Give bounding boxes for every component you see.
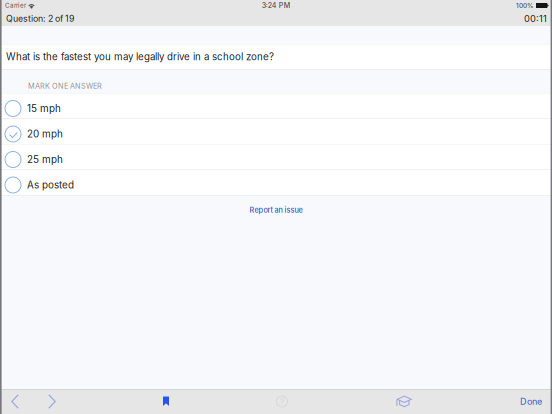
staticText: Carrier: [5, 2, 26, 9]
staticText: Report an issue: [249, 206, 302, 214]
button[interactable]: Report an issue: [0, 203, 552, 216]
button[interactable]: Study guide: [389, 389, 419, 414]
button[interactable]: 25 mph: [0, 144, 552, 170]
button[interactable]: As posted: [0, 170, 552, 195]
staticText: MARK ONE ANSWER: [28, 82, 102, 90]
button[interactable]: 20 mph: [0, 119, 552, 144]
staticText: Question: 2 of 19: [6, 13, 74, 24]
staticText: 20 mph: [27, 128, 63, 140]
staticText: 3:24 PM: [262, 1, 290, 10]
staticText: 25 mph: [27, 153, 63, 165]
staticText: What is the fastest you may legally driv…: [6, 51, 274, 63]
button[interactable]: Help: [267, 389, 297, 414]
staticText: 00:11: [524, 13, 547, 24]
staticText: ?: [280, 396, 284, 407]
staticText: As posted: [27, 179, 74, 191]
staticText: Done: [520, 396, 542, 407]
staticText: 15 mph: [27, 102, 61, 114]
button[interactable]: Done: [514, 389, 548, 414]
button[interactable]: Previous question: [2, 389, 28, 414]
button[interactable]: Next question: [39, 389, 65, 414]
button[interactable]: 15 mph: [0, 93, 552, 119]
button[interactable]: Bookmark: [151, 389, 181, 414]
staticText: 100%: [516, 1, 533, 9]
